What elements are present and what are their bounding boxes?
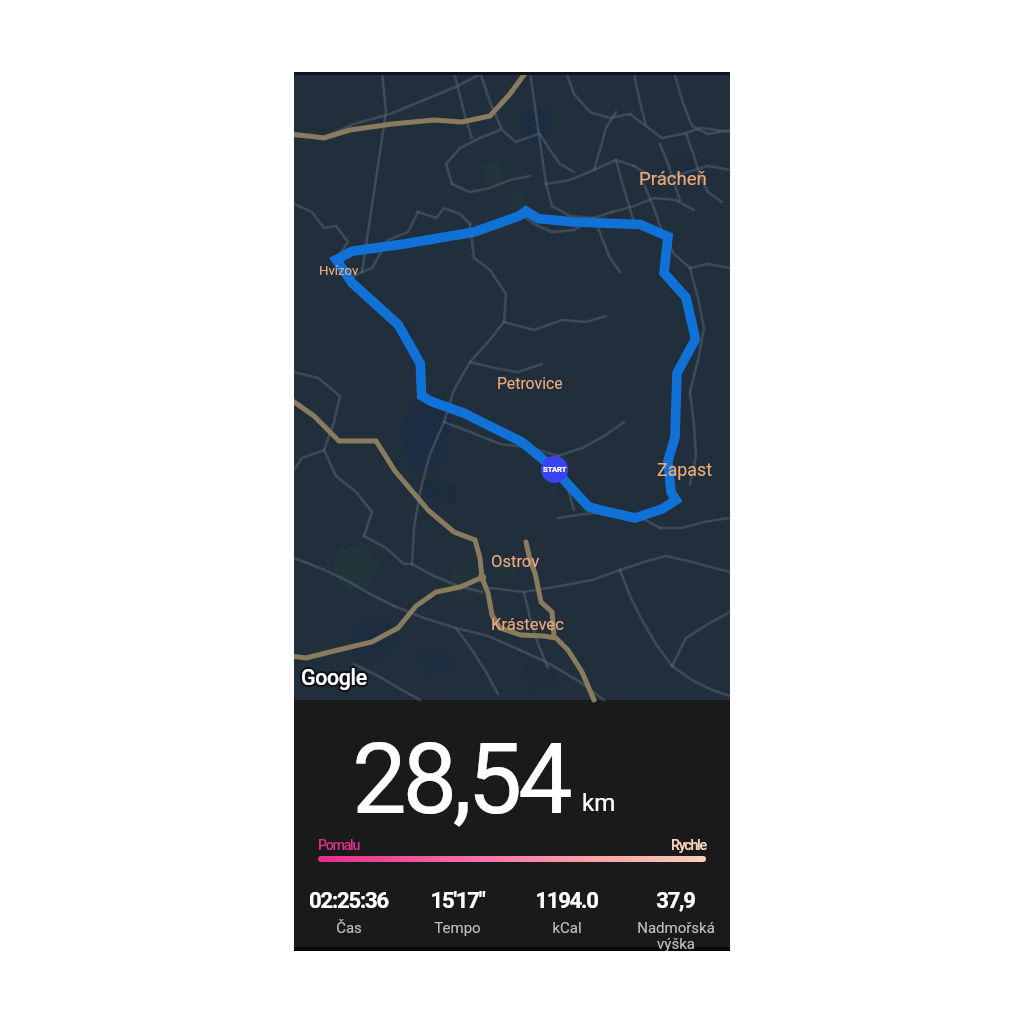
staticText: Zapast [657,459,713,480]
staticText: kCal [552,919,582,937]
staticText: Nadmořská výška [637,919,715,951]
staticText: Google [303,666,369,691]
button[interactable]: 1194.0 [512,888,621,932]
staticText: Google [300,665,366,690]
staticText: Google [300,664,366,689]
staticText: Google [299,664,365,689]
staticText: Google [302,666,368,691]
staticText: Google [301,667,367,692]
staticText: Pomalu [318,837,360,854]
staticText: Krástevec [491,615,564,634]
staticText: 15'17" [430,888,485,914]
staticText: Google [301,666,367,691]
staticText: 1194.0 [535,888,598,914]
staticText: Google [301,664,367,689]
staticText: Rychle [671,837,706,854]
staticText: Google [301,663,367,688]
staticText: 02:25:36 [309,888,388,914]
button[interactable]: 37,9 [621,888,730,947]
staticText: Google [299,666,365,691]
staticText: Petrovice [497,374,563,393]
staticText: Hvízov [319,263,359,278]
button[interactable]: Start point [541,456,568,483]
staticText: Google [302,663,368,688]
staticText: Ostrov [491,552,540,571]
staticText: Google [303,664,369,689]
staticText: Google [300,663,366,688]
staticText: Čas [336,919,362,937]
staticText: Google [302,665,368,690]
staticText: km [582,789,616,817]
button[interactable]: 02:25:36 [294,888,403,932]
staticText: START [543,465,567,474]
staticText: Google [300,667,366,692]
staticText: Tempo [434,919,481,937]
staticText: Google [303,665,369,690]
button[interactable]: Route map [294,72,730,700]
staticText: Google [301,665,367,690]
staticText: Google [302,664,368,689]
staticText: 28,54 [352,723,569,837]
staticText: 37,9 [656,888,695,914]
staticText: Google [300,666,366,691]
staticText: Google [302,667,368,692]
staticText: Google [301,665,367,690]
staticText: Prácheň [639,168,707,190]
button[interactable]: 15'17" [403,888,512,932]
button[interactable] [318,856,706,862]
staticText: Google [299,665,365,690]
